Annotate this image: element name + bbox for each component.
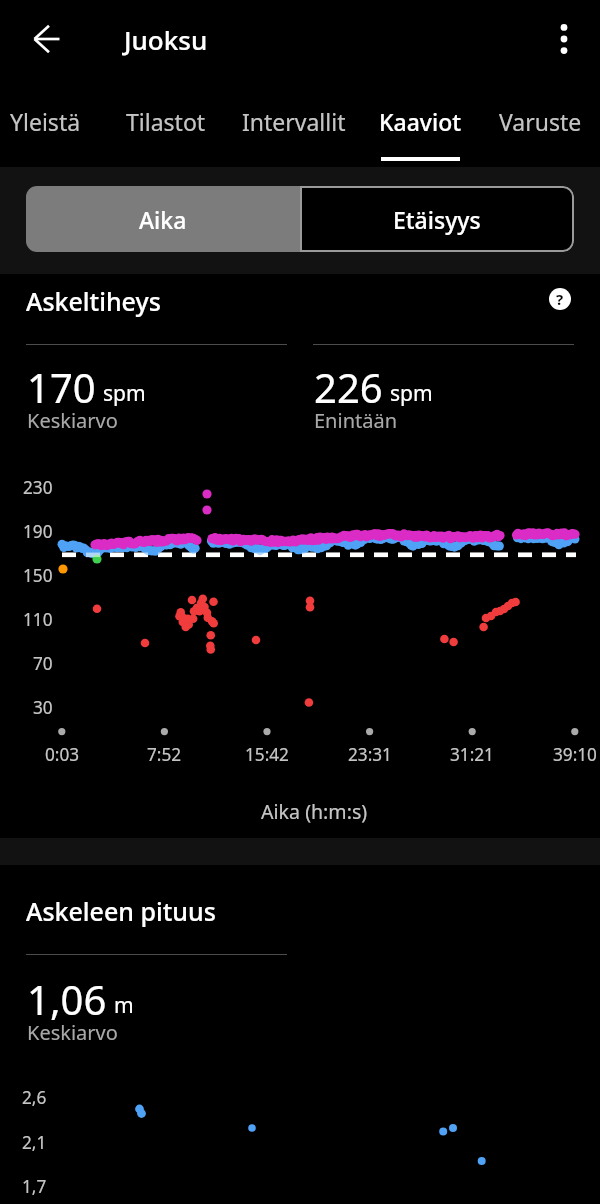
staticText: Tilastot — [126, 106, 206, 137]
staticText: spm — [390, 379, 433, 408]
button[interactable]: Etäisyys — [300, 186, 574, 252]
button[interactable]: Aika — [26, 186, 300, 252]
staticText: 230 — [23, 476, 53, 499]
staticText: 15:42 — [245, 743, 289, 766]
staticText: 30 — [33, 696, 53, 719]
staticText: Aika — [139, 204, 187, 235]
staticText: 1,06 — [27, 972, 107, 1026]
button[interactable]: Intervallit — [234, 95, 354, 165]
staticText: Keskiarvo — [27, 1019, 118, 1046]
staticText: 70 — [33, 652, 53, 675]
staticText: Kaaviot — [379, 106, 462, 137]
staticText: Intervallit — [242, 106, 346, 137]
staticText: m — [114, 991, 134, 1020]
staticText: 7:52 — [147, 743, 182, 766]
button[interactable]: Help — [549, 288, 571, 310]
staticText: spm — [103, 379, 146, 408]
staticText: 2,6 — [22, 1086, 47, 1109]
staticText: Yleistä — [10, 106, 81, 137]
staticText: Aika (h:m:s) — [261, 798, 368, 825]
staticText: Etäisyys — [393, 204, 481, 235]
staticText: 0:03 — [45, 743, 80, 766]
staticText: 170 — [27, 360, 96, 414]
staticText: 31:21 — [450, 743, 494, 766]
button[interactable]: Varuste — [489, 95, 591, 165]
staticText: Enintään — [314, 407, 398, 434]
button[interactable]: Tilastot — [116, 95, 216, 165]
staticText: 23:31 — [348, 743, 392, 766]
button[interactable]: Yleistä — [0, 95, 91, 165]
staticText: Varuste — [499, 106, 582, 137]
button[interactable]: Kaaviot — [370, 95, 470, 165]
staticText: 2,1 — [22, 1131, 47, 1154]
staticText: 1,7 — [22, 1175, 47, 1198]
staticText: Askeltiheys — [26, 284, 161, 318]
staticText: 110 — [23, 608, 53, 631]
staticText: Askeleen pituus — [26, 894, 216, 928]
button[interactable]: Askeltiheys chart card — [0, 274, 600, 838]
staticText: 39:10 — [553, 743, 597, 766]
button[interactable]: Back — [23, 15, 71, 63]
staticText: Keskiarvo — [27, 407, 118, 434]
button[interactable]: Askeleen pituus chart card — [0, 865, 600, 1204]
staticText: ? — [556, 289, 564, 309]
staticText: 150 — [23, 564, 53, 587]
staticText: 190 — [23, 520, 53, 543]
staticText: Juoksu — [124, 22, 208, 57]
button[interactable]: More options — [540, 15, 588, 63]
staticText: 226 — [314, 360, 383, 414]
